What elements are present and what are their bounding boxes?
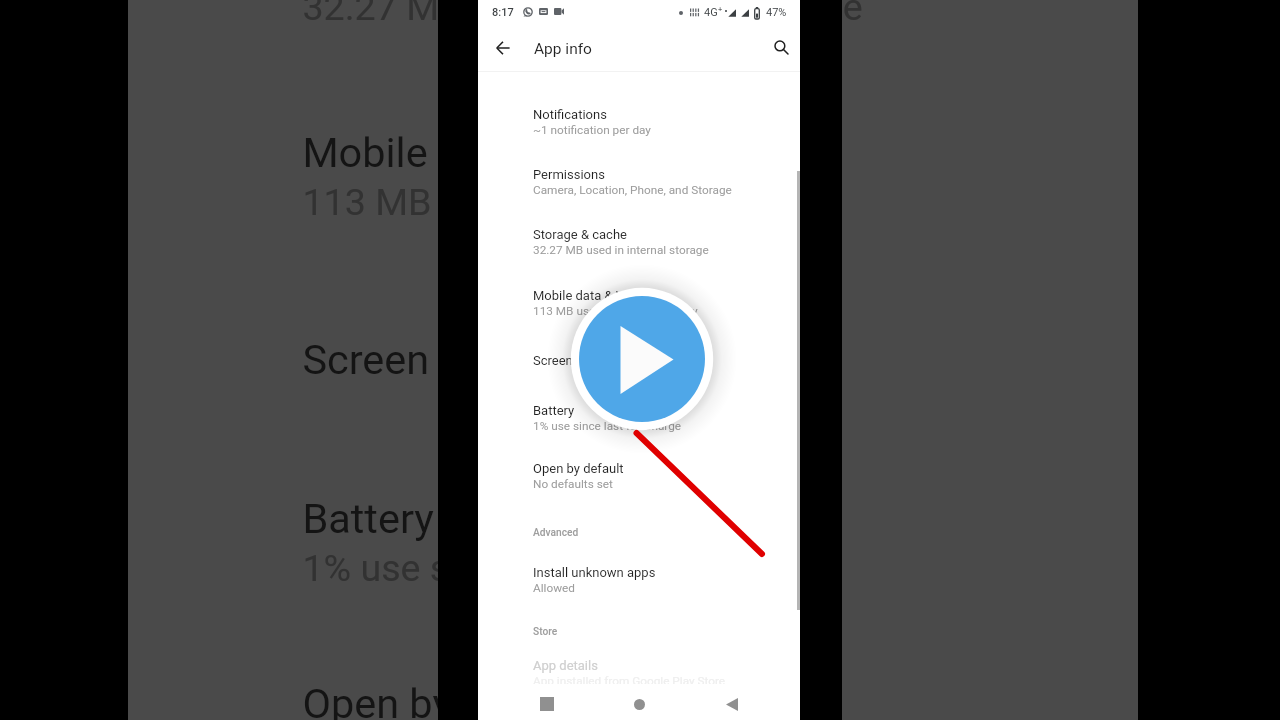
button[interactable]: Search — [768, 35, 794, 61]
staticText: Notifications — [533, 107, 607, 122]
staticText: 1% use since last full charge — [533, 419, 682, 433]
staticText: Permissions — [533, 167, 605, 182]
staticText: Screen time — [533, 353, 602, 368]
button[interactable]: Play — [547, 264, 737, 454]
button[interactable]: Screen time — [128, 304, 1138, 406]
staticText: Open by default — [302, 680, 593, 720]
staticText: 47% — [766, 6, 787, 19]
staticText: Mobile data & Wi-Fi — [302, 128, 660, 176]
staticText: Mobile data & Wi-Fi — [533, 288, 645, 303]
button[interactable]: Mobile data & Wi-Fi — [128, 96, 1138, 246]
staticText: 4G — [704, 6, 718, 19]
staticText: 32.27 MB used in internal storage — [302, 0, 864, 30]
button[interactable]: App details — [478, 648, 800, 695]
button[interactable]: Open by default — [128, 648, 1138, 720]
button[interactable]: Open by default — [478, 451, 800, 498]
button[interactable]: Storage & cache — [478, 217, 800, 264]
staticText: 32.27 MB used in internal storage — [533, 243, 709, 257]
staticText: Store — [533, 626, 558, 638]
staticText: Open by default — [533, 461, 624, 476]
button[interactable]: Storage & cache — [128, 0, 1138, 52]
staticText: 8:17 — [492, 6, 514, 19]
button[interactable]: Permissions — [478, 157, 800, 204]
button[interactable]: Battery — [128, 463, 1138, 613]
button[interactable]: Battery — [478, 393, 800, 440]
staticText: Camera, Location, Phone, and Storage — [533, 183, 732, 197]
staticText: App details — [533, 658, 598, 673]
staticText: Battery — [533, 403, 575, 418]
button[interactable]: Back — [491, 36, 515, 60]
staticText: No defaults set — [533, 477, 613, 491]
staticText: Storage & cache — [533, 227, 627, 242]
button[interactable]: Install unknown apps — [478, 555, 800, 602]
staticText: 113 MB used since Oct 2 – Nov — [533, 304, 698, 318]
button[interactable]: Notifications — [478, 97, 800, 144]
staticText: 113 MB used since Oct 2 – Nov — [302, 179, 829, 224]
staticText: 1% use since last full charge — [302, 546, 778, 591]
staticText: Screen time — [302, 336, 522, 383]
staticText: App info — [534, 40, 592, 58]
staticText: Install unknown apps — [533, 565, 656, 580]
button[interactable]: Mobile data & Wi-Fi — [478, 278, 800, 325]
staticText: + — [718, 5, 723, 14]
staticText: Advanced — [533, 527, 579, 539]
button[interactable]: Recents — [534, 691, 560, 717]
staticText: Battery — [302, 495, 436, 543]
staticText: App installed from Google Play Store — [533, 674, 726, 688]
staticText: ~1 notification per day — [533, 123, 651, 137]
button[interactable]: Home — [626, 691, 652, 717]
staticText: Allowed — [533, 581, 575, 595]
button[interactable]: Back — [719, 691, 745, 717]
button[interactable]: Screen time — [478, 343, 800, 375]
